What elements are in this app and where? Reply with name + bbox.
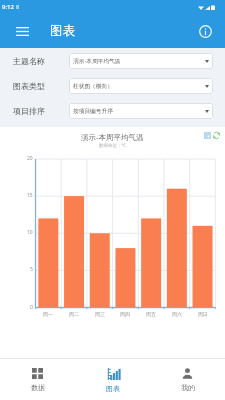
staticText: 图表 bbox=[50, 23, 75, 39]
button[interactable]: 柱状图（横向） bbox=[69, 78, 213, 94]
button[interactable]: Info bbox=[195, 21, 215, 41]
button[interactable]: 我的 bbox=[150, 359, 225, 400]
staticText: 15 bbox=[27, 192, 33, 199]
staticText: 我的 bbox=[181, 383, 195, 392]
staticText: 20 bbox=[27, 155, 33, 162]
button[interactable]: 按项目编号升序 bbox=[69, 103, 213, 119]
staticText: 周四 bbox=[120, 311, 130, 317]
button[interactable]: 演示-本周平均气温 bbox=[69, 53, 213, 69]
staticText: 柱状图（横向） bbox=[73, 83, 205, 90]
staticText: 数据单位：℃ bbox=[99, 142, 126, 148]
staticText: 周日 bbox=[198, 311, 208, 317]
staticText: 周三 bbox=[95, 311, 105, 317]
staticText: 10 bbox=[27, 229, 33, 236]
staticText: 数据 bbox=[31, 383, 45, 392]
staticText: 9:12 bbox=[2, 3, 14, 11]
staticText: 周二 bbox=[69, 311, 79, 317]
staticText: 演示-本周平均气温 bbox=[81, 132, 144, 142]
staticText: 按项目编号升序 bbox=[73, 108, 205, 115]
button[interactable]: Refresh bbox=[212, 131, 221, 140]
staticText: 项目排序 bbox=[13, 106, 45, 116]
staticText: 5 bbox=[30, 266, 33, 273]
staticText: 周一 bbox=[43, 311, 53, 317]
staticText: 图表类型 bbox=[13, 81, 45, 91]
button[interactable]: Table view bbox=[204, 132, 211, 139]
button[interactable]: 数据 bbox=[0, 359, 75, 400]
staticText: 周六 bbox=[172, 311, 182, 317]
staticText: 周五 bbox=[146, 311, 156, 317]
button[interactable]: 图表 bbox=[75, 359, 150, 400]
staticText: 主题名称 bbox=[13, 56, 45, 66]
staticText: 演示-本周平均气温 bbox=[73, 57, 205, 65]
staticText: 0 bbox=[30, 304, 33, 311]
staticText: 图表 bbox=[106, 384, 120, 393]
button[interactable]: Menu bbox=[12, 21, 32, 41]
